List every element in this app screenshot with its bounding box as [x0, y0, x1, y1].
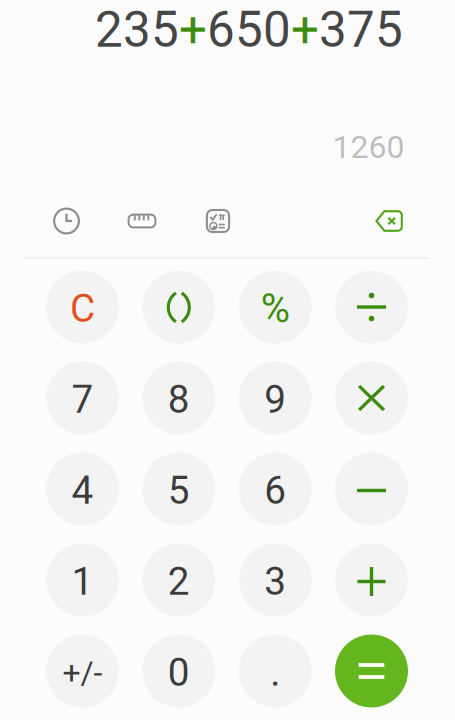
staticText: C [70, 286, 95, 331]
button[interactable]: 5 [142, 452, 215, 525]
button[interactable]: 2 [142, 543, 215, 616]
button[interactable]: History [40, 198, 92, 244]
button[interactable]: 1 [46, 543, 119, 616]
staticText: + [291, 1, 319, 59]
button[interactable]: Backspace [363, 198, 415, 244]
button[interactable]: . [239, 634, 312, 707]
staticText: 375 [319, 1, 403, 59]
staticText: 4 [71, 468, 93, 513]
staticText: 3 [264, 559, 286, 604]
staticText: 6 [264, 468, 286, 513]
staticText: 5 [168, 468, 190, 513]
button[interactable]: Equals [335, 634, 408, 707]
button[interactable]: Multiply [335, 361, 408, 434]
staticText: % [261, 285, 290, 332]
button[interactable]: 4 [46, 452, 119, 525]
button[interactable]: 8 [142, 361, 215, 434]
button[interactable]: 6 [239, 452, 312, 525]
button[interactable]: 7 [46, 361, 119, 434]
staticText: 235 [95, 1, 179, 59]
staticText: 0 [168, 650, 190, 695]
button[interactable]: C [46, 270, 119, 343]
staticText: +/- [62, 654, 102, 691]
button[interactable]: Unit converter [116, 198, 168, 244]
staticText: 650 [207, 1, 291, 59]
staticText: 1260 [332, 128, 404, 166]
staticText: 1 [71, 559, 93, 604]
button[interactable]: Divide [335, 270, 408, 343]
button[interactable]: Parentheses [142, 270, 215, 343]
button[interactable]: +/- [46, 634, 119, 707]
staticText: + [179, 1, 207, 59]
button[interactable]: Plus [335, 543, 408, 616]
staticText: 7 [71, 377, 93, 422]
staticText: 8 [168, 377, 190, 422]
button[interactable]: 3 [239, 543, 312, 616]
staticText: 9 [264, 377, 286, 422]
button[interactable]: % [239, 270, 312, 343]
staticText: . [270, 650, 280, 695]
staticText: 2 [168, 559, 190, 604]
button[interactable]: Minus [335, 452, 408, 525]
button[interactable]: 9 [239, 361, 312, 434]
button[interactable]: Scientific calculator [192, 198, 244, 244]
button[interactable]: 0 [142, 634, 215, 707]
